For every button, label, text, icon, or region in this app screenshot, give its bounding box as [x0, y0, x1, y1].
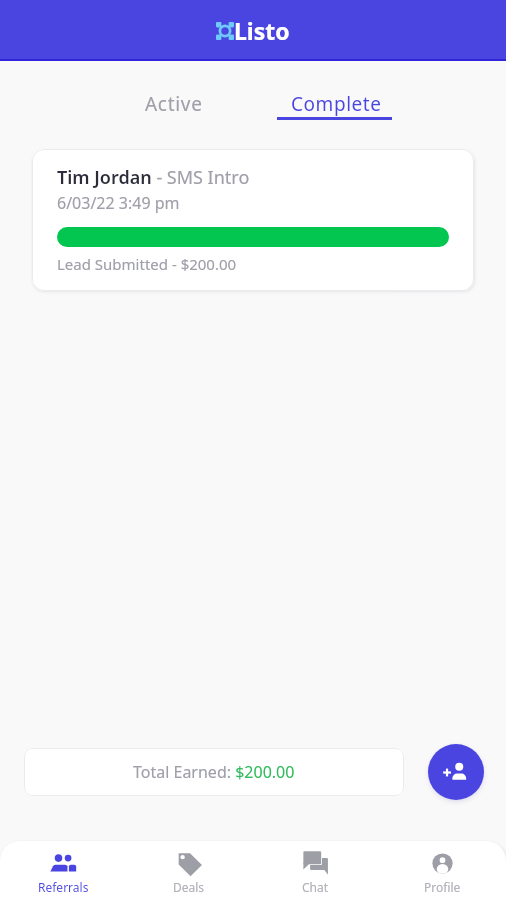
staticText: 6/03/22 3:49 pm: [57, 192, 180, 214]
staticText: Profile: [424, 879, 461, 895]
button[interactable]: Complete: [255, 61, 418, 131]
staticText: Complete: [291, 91, 382, 117]
button[interactable]: Active: [92, 61, 255, 131]
button[interactable]: Profile: [379, 841, 506, 900]
button[interactable]: Add referral: [428, 744, 484, 800]
button[interactable]: Tim Jordan - SMS Intro: [32, 149, 474, 291]
button[interactable]: Chat: [252, 841, 379, 900]
button[interactable]: Deals: [126, 841, 252, 900]
staticText: Listo: [234, 15, 290, 46]
button[interactable]: Referrals: [0, 841, 126, 900]
staticText: Total Earned: $200.00: [133, 761, 295, 783]
staticText: Active: [145, 91, 203, 117]
button[interactable]: Total Earned: $200.00: [24, 748, 404, 796]
staticText: Tim Jordan - SMS Intro: [57, 165, 250, 190]
staticText: Chat: [302, 879, 329, 895]
staticText: Referrals: [38, 879, 89, 895]
staticText: Deals: [173, 879, 205, 895]
staticText: Lead Submitted - $200.00: [57, 254, 237, 274]
